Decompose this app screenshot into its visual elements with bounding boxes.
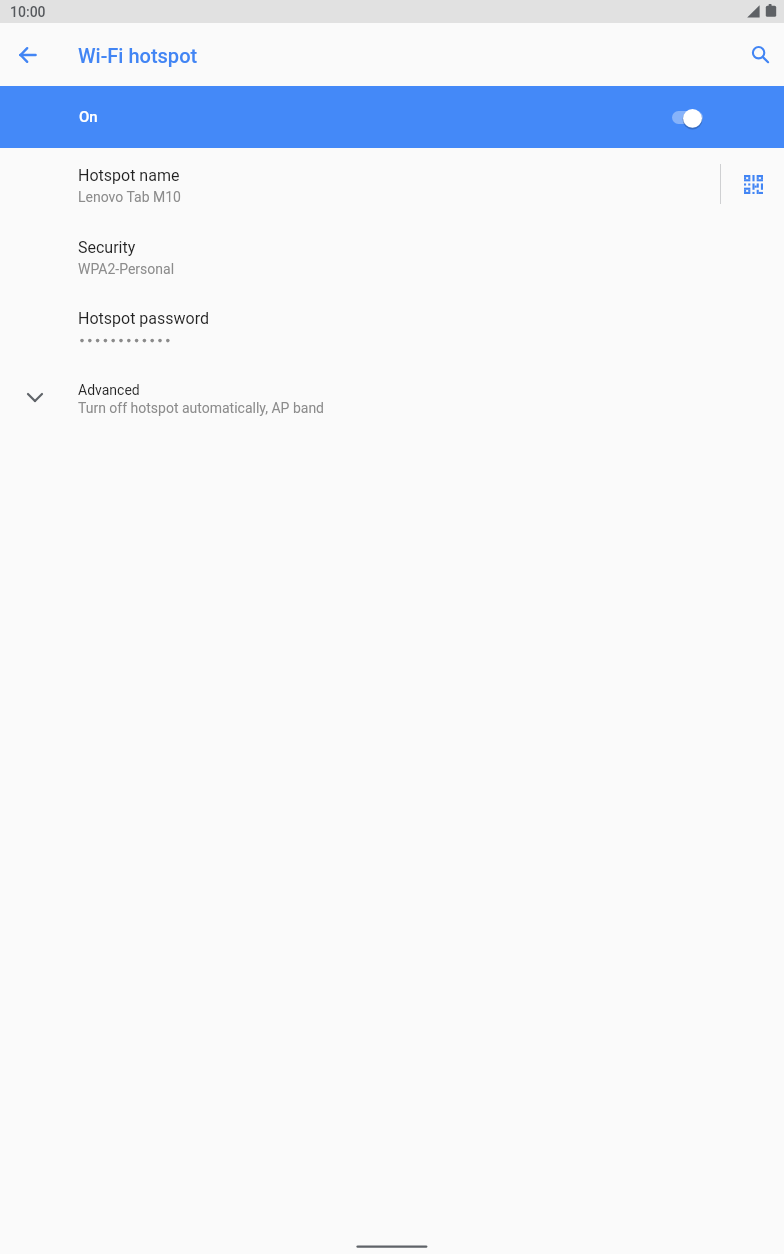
staticText: WPA2-Personal: [78, 261, 175, 277]
button[interactable]: Share Wi-Fi hotspot QR code: [730, 161, 776, 207]
button[interactable]: On: [0, 86, 784, 148]
button[interactable]: Navigate up: [7, 35, 47, 75]
button[interactable]: Security: [0, 226, 784, 297]
staticText: Wi-Fi hotspot: [78, 44, 198, 67]
staticText: Hotspot password: [78, 309, 209, 328]
button[interactable]: Search: [738, 35, 778, 75]
staticText: Lenovo Tab M10: [78, 189, 181, 205]
staticText: 10:00: [10, 4, 46, 20]
staticText: Hotspot name: [78, 166, 180, 185]
button[interactable]: Advanced: [0, 369, 784, 440]
staticText: Security: [78, 238, 136, 257]
button[interactable]: Hotspot name: [0, 154, 720, 225]
button[interactable]: Hotspot password: [0, 297, 784, 368]
staticText: Advanced: [78, 382, 140, 398]
staticText: Turn off hotspot automatically, AP band: [78, 400, 325, 416]
staticText: On: [79, 108, 98, 126]
